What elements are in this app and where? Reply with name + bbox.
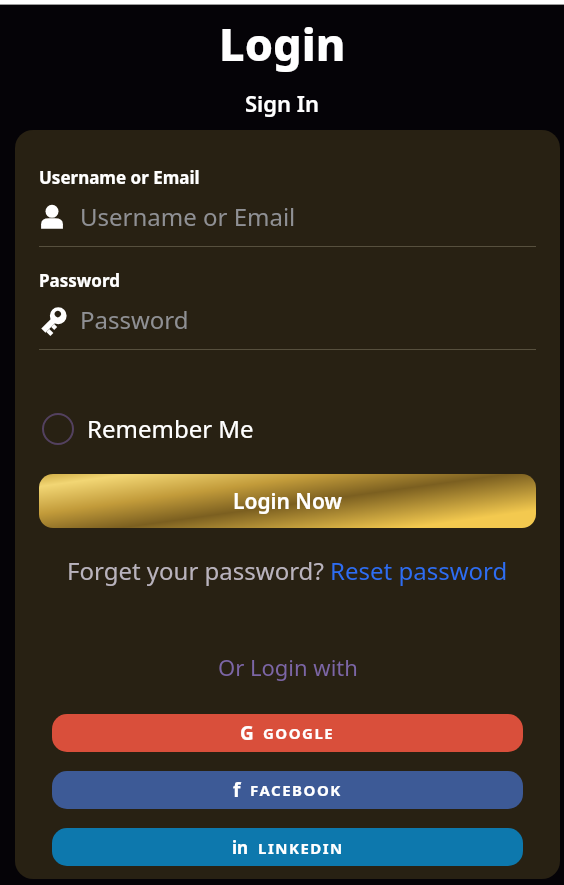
staticText: Password: [80, 303, 189, 336]
staticText: Or Login with: [218, 652, 358, 682]
staticText: f: [233, 777, 241, 803]
button[interactable]: Forget your password? Reset password: [39, 554, 536, 587]
button[interactable]: in: [52, 828, 523, 866]
staticText: Login: [219, 13, 346, 74]
staticText: LINKEDIN: [258, 838, 344, 858]
staticText: Username or Email: [39, 166, 200, 189]
staticText: in: [232, 836, 249, 859]
button[interactable]: Login Now: [39, 474, 536, 528]
button[interactable]: Password: [39, 303, 189, 336]
staticText: Forget your password? Reset password: [67, 554, 508, 587]
button[interactable]: G: [52, 714, 523, 752]
staticText: GOOGLE: [263, 723, 335, 743]
button[interactable]: Username or Email: [39, 200, 296, 233]
staticText: Remember Me: [87, 412, 254, 445]
button[interactable]: Remember Me: [42, 412, 254, 445]
staticText: FACEBOOK: [250, 780, 342, 800]
staticText: Login Now: [233, 487, 342, 516]
staticText: Sign In: [245, 88, 320, 118]
button[interactable]: f: [52, 771, 523, 809]
staticText: G: [240, 720, 254, 746]
staticText: Username or Email: [80, 200, 296, 233]
staticText: Password: [39, 269, 120, 292]
